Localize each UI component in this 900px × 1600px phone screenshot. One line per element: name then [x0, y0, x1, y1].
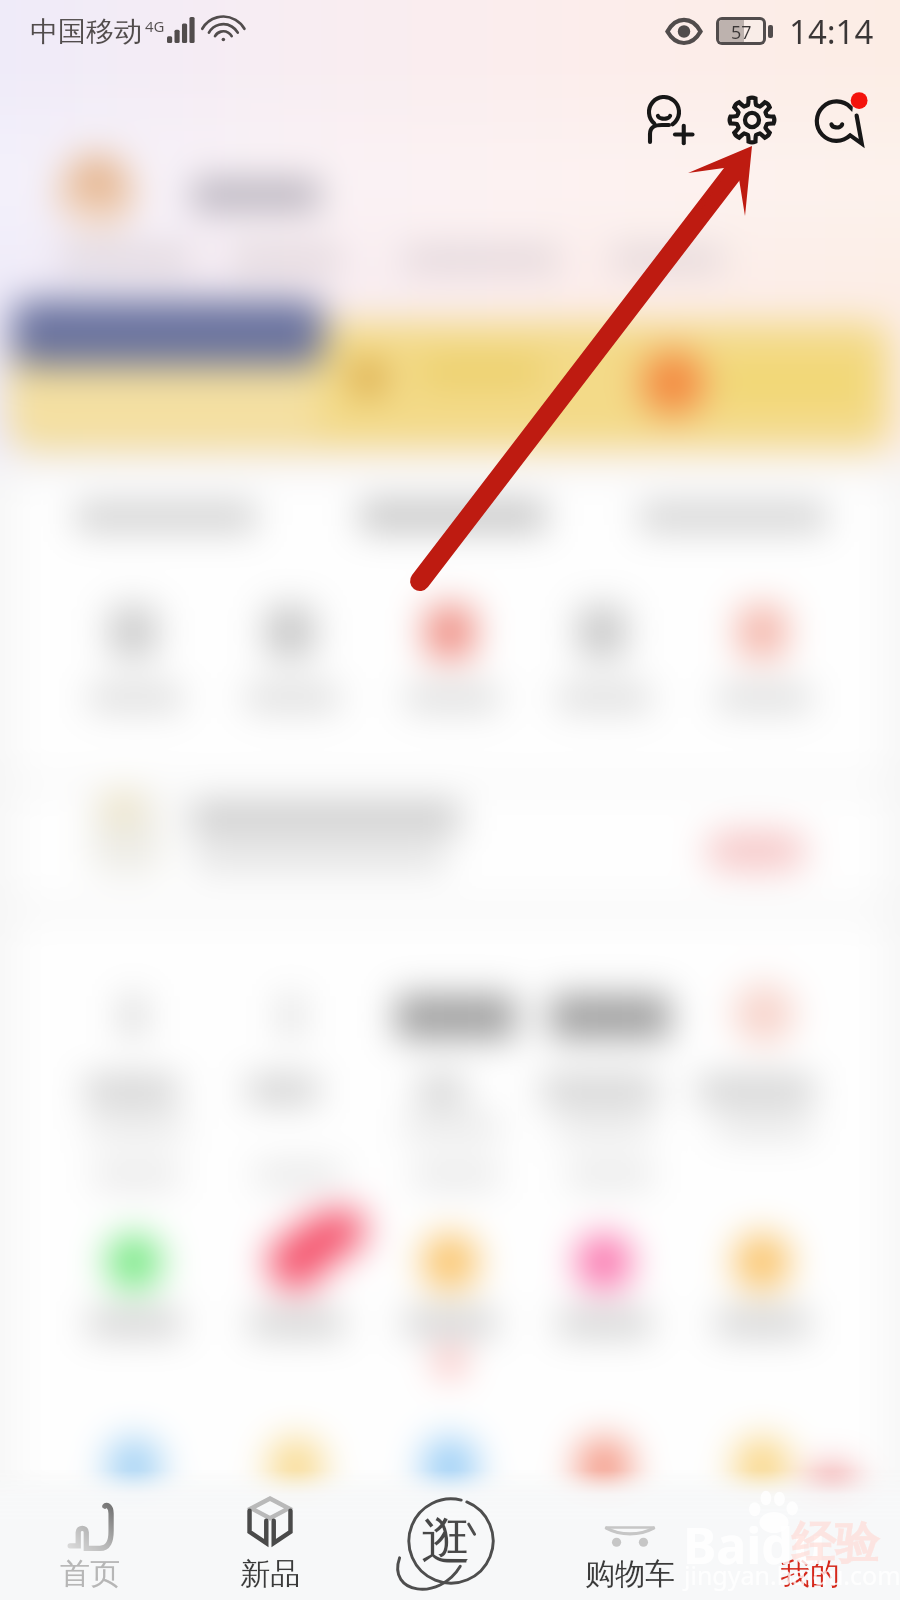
button[interactable]: 购物车 — [540, 1450, 720, 1514]
button[interactable]: Settings — [710, 78, 794, 162]
staticText: 我的 — [780, 1555, 840, 1593]
staticText: 57 — [731, 20, 752, 42]
staticText: 逛 — [421, 1510, 471, 1573]
button[interactable]: Messages — [796, 76, 884, 164]
staticText: 新品 — [240, 1555, 300, 1593]
staticText: Baidu — [683, 1511, 826, 1579]
button[interactable]: 首页 — [0, 1450, 180, 1512]
staticText: 中国移动 — [30, 14, 142, 49]
staticText: 首页 — [60, 1555, 120, 1593]
staticText: 14:14 — [789, 9, 874, 54]
staticText: jingyan.baidu.com — [684, 1558, 900, 1592]
button[interactable]: 新品 — [180, 1450, 360, 1512]
button[interactable]: Browse — [360, 1450, 540, 1558]
staticText: 购物车 — [585, 1555, 675, 1593]
staticText: 4G — [145, 16, 165, 36]
staticText: 经验 — [791, 1516, 879, 1571]
button[interactable]: Add friend — [627, 78, 711, 162]
button[interactable]: 我的 — [720, 1450, 900, 1506]
